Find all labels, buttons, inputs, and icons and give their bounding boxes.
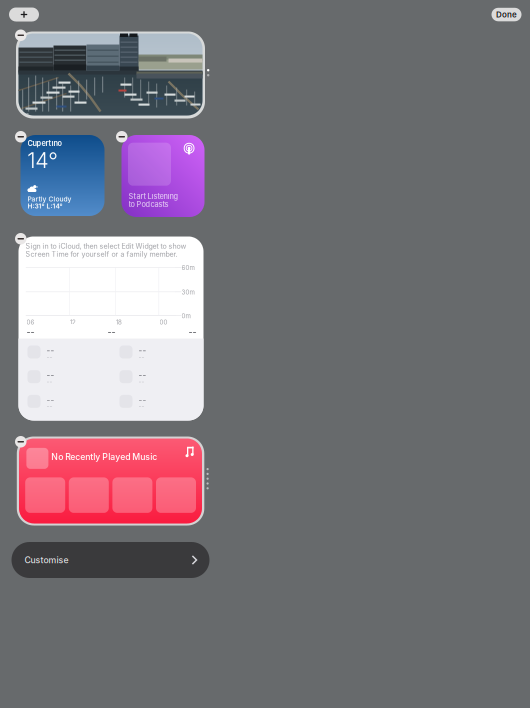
button[interactable]: Remove widget [15, 131, 26, 142]
staticText: 06 [26, 318, 34, 326]
button[interactable]: Remove widget [116, 131, 127, 142]
staticText: -- [138, 402, 144, 410]
staticText: Cupertino [27, 139, 61, 148]
staticText: Sign in to iCloud, then select Edit Widg… [25, 242, 186, 250]
staticText: -- [138, 345, 146, 355]
button[interactable]: Start Listening [121, 135, 204, 217]
staticText: -- [46, 395, 54, 405]
button[interactable]: Remove widget [15, 436, 26, 447]
staticText: -- [46, 345, 54, 355]
button[interactable]: Cupertino [20, 135, 104, 216]
staticText: 30m [181, 288, 194, 296]
button[interactable]: Done [491, 8, 521, 21]
staticText: No Recently Played Music [51, 452, 157, 462]
staticText: -- [138, 395, 146, 405]
staticText: 14° [27, 147, 58, 173]
staticText: Start Listening [128, 192, 178, 201]
button[interactable]: Remove widget [15, 233, 26, 244]
staticText: to Podcasts [128, 200, 168, 209]
staticText: -- [188, 326, 196, 337]
staticText: Screen Time for yourself or a family mem… [25, 250, 177, 258]
staticText: -- [138, 353, 144, 360]
staticText: 0m [181, 312, 190, 320]
staticText: -- [138, 378, 144, 385]
staticText: -- [46, 378, 52, 385]
staticText: -- [46, 353, 52, 360]
button[interactable]: Sign in to iCloud, then select Edit Widg… [18, 236, 203, 420]
staticText: -- [46, 402, 52, 410]
staticText: Customise [24, 555, 68, 565]
staticText: 12 [70, 318, 76, 326]
staticText: -- [26, 326, 34, 337]
button[interactable]: Add widget [9, 7, 39, 21]
staticText: H:31° L:14° [27, 202, 62, 210]
staticText: 18 [116, 318, 122, 326]
staticText: Done [496, 10, 517, 19]
button[interactable]: Remove widget [15, 29, 26, 41]
staticText: -- [138, 370, 146, 380]
button[interactable]: Customise [11, 542, 209, 578]
staticText: -- [107, 326, 115, 337]
staticText: -- [46, 370, 54, 380]
staticText: Partly Cloudy [27, 195, 71, 203]
button[interactable]: No Recently Played Music [19, 438, 202, 523]
staticText: 00 [159, 318, 167, 326]
staticText: 60m [181, 264, 194, 271]
